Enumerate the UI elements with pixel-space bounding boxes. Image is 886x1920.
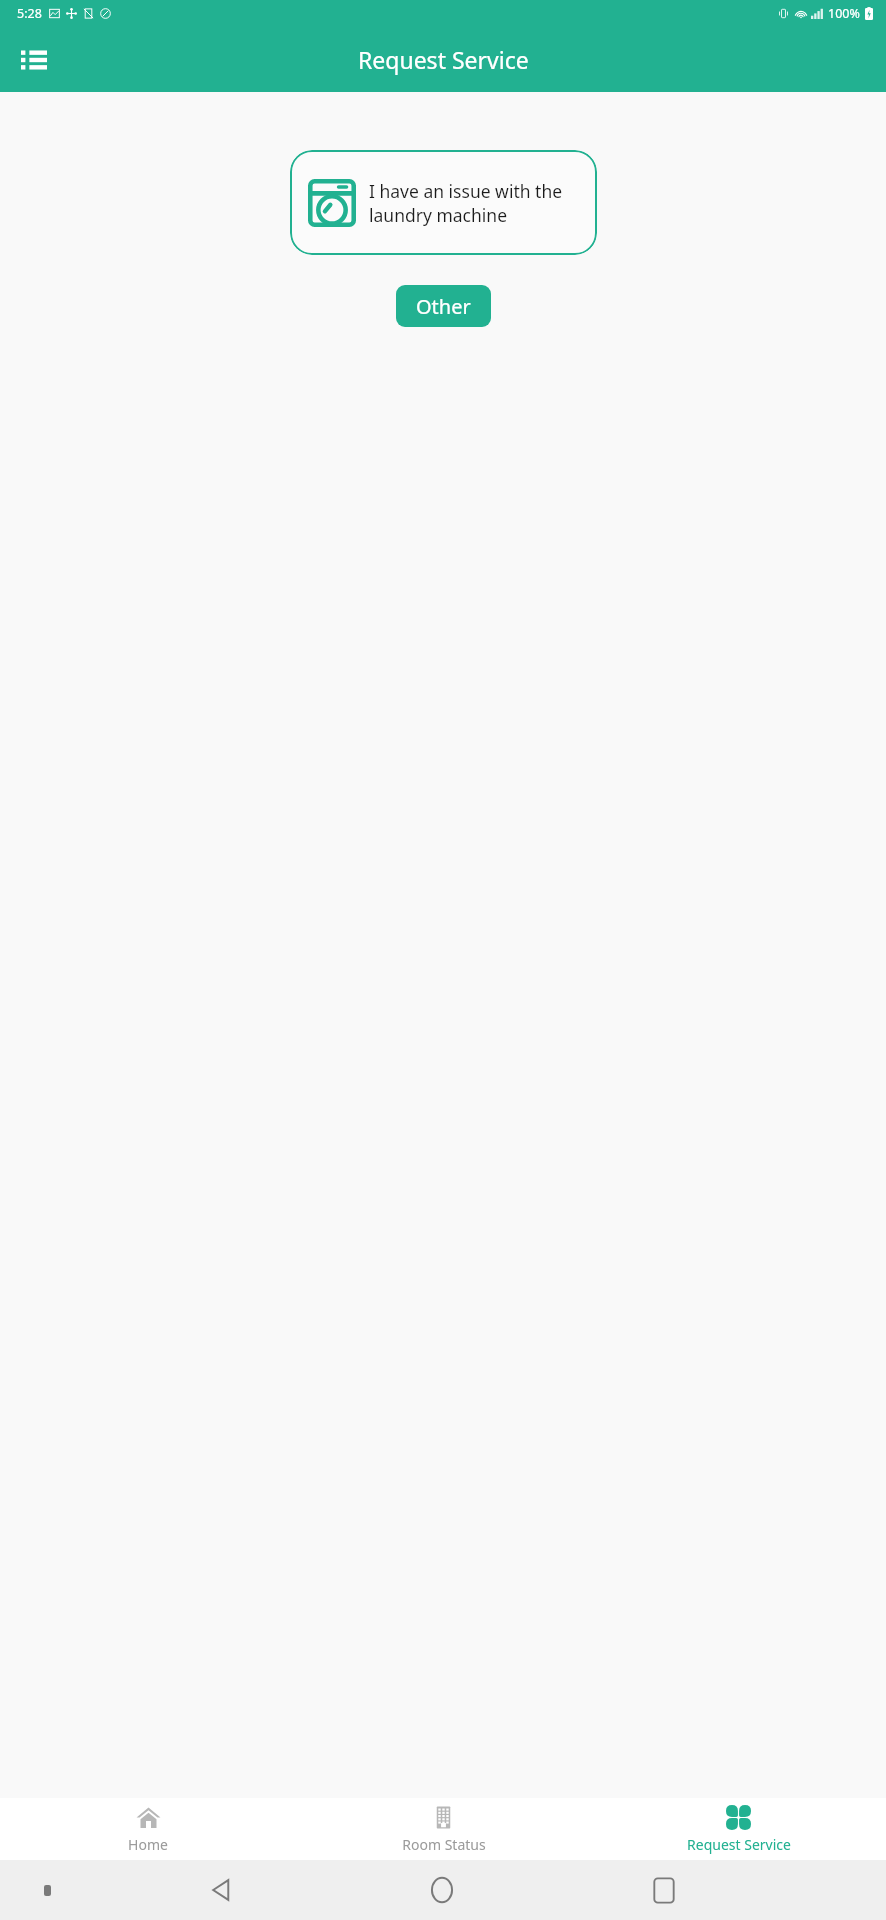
staticText: 5:28 bbox=[17, 5, 42, 22]
button[interactable]: Home bbox=[331, 1876, 553, 1904]
button[interactable]: Other bbox=[396, 285, 491, 327]
button[interactable]: Room Status bbox=[296, 1799, 591, 1860]
staticText: Request Service bbox=[358, 44, 529, 75]
button[interactable]: Back bbox=[110, 1877, 331, 1903]
button[interactable]: Recents bbox=[553, 1877, 775, 1904]
staticText: Request Service bbox=[687, 1835, 791, 1854]
staticText: Home bbox=[128, 1835, 168, 1854]
staticText: Room Status bbox=[402, 1835, 486, 1854]
button[interactable]: Menu bbox=[10, 36, 58, 84]
button[interactable]: Home bbox=[0, 1799, 296, 1860]
staticText: I have an issue with the laundry machine bbox=[369, 179, 579, 227]
staticText: Other bbox=[416, 293, 471, 320]
staticText: 100% bbox=[828, 5, 860, 22]
button[interactable]: I have an issue with the laundry machine bbox=[290, 150, 597, 255]
button[interactable]: Request Service bbox=[591, 1799, 886, 1860]
